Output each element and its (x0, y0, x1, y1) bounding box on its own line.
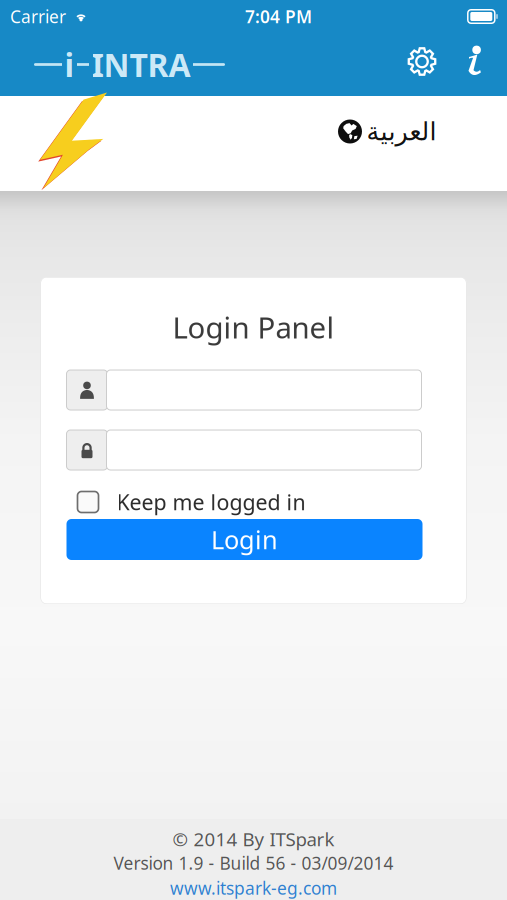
button[interactable]: Keep me logged in (66, 492, 422, 512)
staticText: INTRA (91, 43, 190, 86)
button[interactable]: Login (66, 519, 422, 560)
button[interactable]: www.itspark-eg.com (170, 878, 337, 898)
staticText: i (64, 43, 74, 86)
button[interactable]: Info (451, 35, 499, 93)
staticText: Version 1.9 - Build 56 - 03/09/2014 (113, 851, 393, 874)
staticText: 7:04 PM (245, 5, 312, 28)
button[interactable]: العربية (330, 120, 444, 167)
staticText: © 2014 By ITSpark (172, 827, 334, 851)
staticText: Login Panel (172, 307, 334, 346)
button[interactable]: Settings (393, 35, 451, 93)
staticText: www.itspark-eg.com (170, 876, 337, 899)
staticText: Keep me logged in (116, 488, 305, 516)
staticText: العربية (366, 117, 436, 146)
staticText: Login (211, 523, 278, 556)
staticText: Carrier (10, 5, 66, 28)
